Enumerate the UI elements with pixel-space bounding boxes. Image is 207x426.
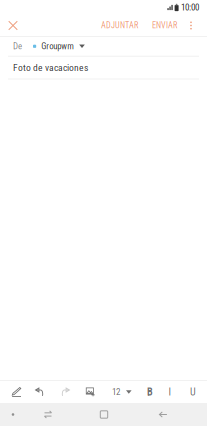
staticText: ADJUNTAR [101, 21, 138, 30]
button[interactable]: Menú [0, 403, 26, 426]
button[interactable]: B [142, 382, 159, 402]
button[interactable]: Más opciones [184, 15, 198, 36]
button[interactable]: De [0, 37, 207, 56]
button[interactable]: Deshacer [28, 382, 51, 402]
button[interactable]: I [162, 382, 179, 402]
staticText: 10:00 [181, 2, 199, 13]
button[interactable]: Foto de vacaciones [0, 57, 207, 79]
button[interactable]: ADJUNTAR [98, 15, 141, 36]
button[interactable]: 12 [110, 382, 134, 402]
staticText: 12 [112, 387, 120, 397]
staticText: Groupwm [41, 41, 74, 51]
button[interactable]: Recientes [91, 403, 117, 426]
button[interactable]: Insertar imagen [79, 382, 102, 402]
button[interactable]: ENVIAR [149, 15, 180, 36]
button[interactable]: U [185, 382, 202, 402]
staticText: B [147, 386, 153, 398]
button[interactable]: Rehacer [54, 382, 77, 402]
staticText: U [190, 386, 196, 398]
staticText: ENVIAR [152, 21, 177, 30]
button[interactable]: Ocultar teclado [35, 403, 61, 426]
button[interactable]: Atrás [150, 403, 176, 426]
button[interactable]: Resaltar [5, 382, 28, 402]
staticText: Foto de vacaciones [13, 62, 88, 73]
button[interactable]: Cerrar [1, 15, 25, 36]
staticText: De [13, 41, 22, 51]
staticText: I [169, 386, 172, 398]
